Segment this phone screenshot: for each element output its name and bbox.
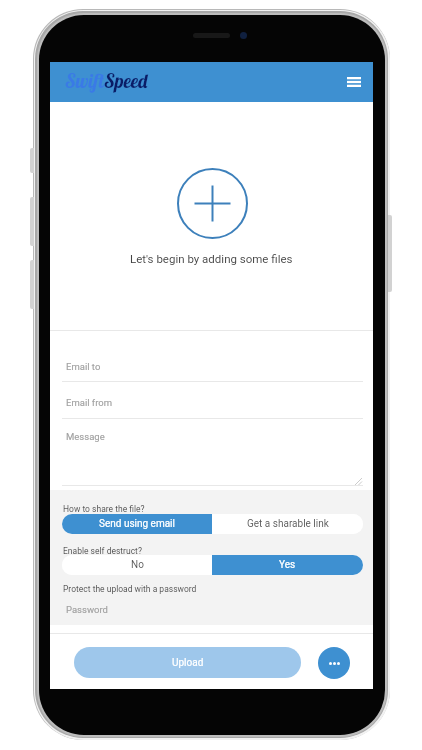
button[interactable]: Add files	[50, 102, 373, 330]
button[interactable]: Email to	[50, 331, 373, 381]
staticText: Send using email	[99, 518, 175, 530]
button[interactable]: Email from	[50, 382, 373, 418]
staticText: Upload	[172, 657, 204, 669]
staticText: Message	[66, 431, 105, 442]
staticText: Swift	[65, 69, 104, 93]
button[interactable]: Upload	[74, 647, 301, 678]
staticText: Let's begin by adding some files	[130, 252, 293, 265]
staticText: Password	[66, 604, 108, 615]
button[interactable]: No	[62, 555, 212, 575]
staticText: How to share the file?	[63, 504, 145, 514]
button[interactable]: More options	[318, 647, 350, 679]
staticText: Email to	[66, 361, 101, 372]
staticText: Email from	[66, 397, 113, 408]
staticText: Speed	[104, 69, 148, 93]
button[interactable]: Message	[50, 419, 373, 485]
staticText: Protect the upload with a password	[63, 584, 197, 594]
staticText: Yes	[279, 559, 296, 571]
staticText: No	[131, 559, 144, 571]
staticText: Enable self destruct?	[63, 546, 142, 556]
staticText: Get a sharable link	[247, 518, 329, 530]
button[interactable]: Send using email	[62, 514, 212, 534]
button[interactable]: Yes	[212, 555, 363, 575]
button[interactable]: Get a sharable link	[212, 514, 363, 534]
button[interactable]: Menu	[341, 69, 367, 95]
